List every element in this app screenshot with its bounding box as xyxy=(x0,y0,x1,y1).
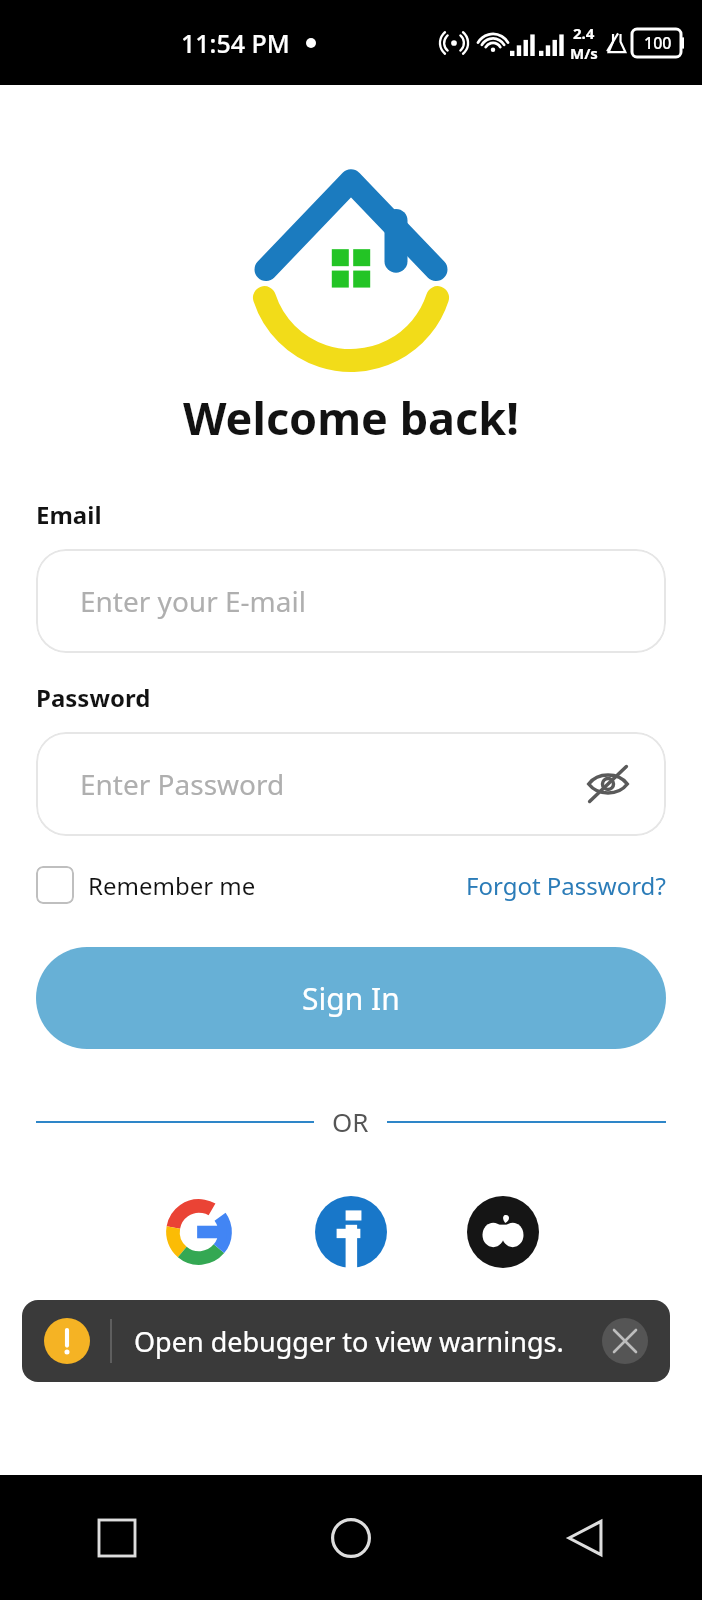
button[interactable]: Sign In xyxy=(36,947,666,1049)
other: Remember me checkbox xyxy=(36,866,74,904)
button[interactable]: Open debugger to view warnings. xyxy=(22,1300,670,1382)
staticText: Signup xyxy=(448,1340,534,1374)
staticText: 11:54 PM xyxy=(181,26,290,60)
staticText: Password xyxy=(36,681,151,714)
staticText: 100 xyxy=(644,32,672,54)
staticText: Open debugger to view warnings. xyxy=(134,1323,564,1360)
staticText: Remember me xyxy=(88,869,256,902)
staticText: 2.4 xyxy=(573,23,595,43)
staticText: OR xyxy=(332,1104,369,1139)
button[interactable]: Recent apps xyxy=(0,1475,234,1600)
staticText: Email xyxy=(36,498,102,531)
button[interactable]: Dismiss warning xyxy=(602,1318,648,1364)
button[interactable]: Enter your E-mail xyxy=(36,549,666,653)
button[interactable]: Enter Password xyxy=(36,732,666,836)
staticText: M/s xyxy=(570,43,598,63)
button[interactable]: Sign in with Facebook xyxy=(315,1196,387,1268)
button[interactable]: Back xyxy=(468,1475,702,1600)
button[interactable]: Sign in with Apple xyxy=(467,1196,539,1268)
staticText: Sign In xyxy=(302,978,400,1019)
button[interactable]: Remember me checkbox xyxy=(36,866,256,904)
staticText: Welcome back! xyxy=(183,387,519,448)
staticText: Enter Password xyxy=(80,765,285,803)
button[interactable]: Home xyxy=(234,1475,468,1600)
button[interactable]: Forgot Password? xyxy=(466,869,666,902)
button[interactable]: Signup xyxy=(448,1340,534,1374)
button[interactable]: Show password xyxy=(582,758,634,810)
staticText: Forgot Password? xyxy=(466,869,666,902)
staticText: Enter your E-mail xyxy=(80,582,306,620)
button[interactable]: Sign in with Google xyxy=(163,1196,235,1268)
staticText: Don't have an account? xyxy=(169,1340,448,1374)
